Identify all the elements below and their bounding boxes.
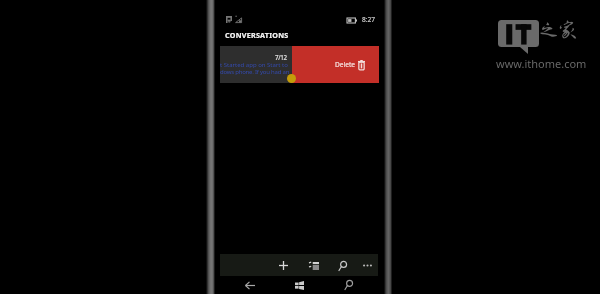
button[interactable]: More options [359, 257, 376, 274]
staticText: CONVERSATIONS [225, 30, 289, 40]
button[interactable]: Select messages [305, 257, 322, 274]
staticText: Delete [335, 60, 356, 69]
staticText: 7/12 [275, 53, 287, 61]
button[interactable]: Start [292, 278, 306, 292]
staticText: 之家 [539, 19, 578, 41]
staticText: 8:27 [362, 15, 376, 24]
button[interactable]: Search [334, 257, 351, 274]
button[interactable]: 7/12 [220, 46, 292, 83]
staticText: dows phone. If you had an [220, 68, 290, 76]
button[interactable]: New conversation [275, 257, 292, 274]
button[interactable]: Search [342, 278, 356, 292]
staticText: www.ithome.com [496, 56, 587, 71]
staticText: t Started app on Start to [220, 61, 288, 69]
button[interactable]: Delete [292, 46, 379, 83]
button[interactable]: Back [243, 278, 257, 292]
